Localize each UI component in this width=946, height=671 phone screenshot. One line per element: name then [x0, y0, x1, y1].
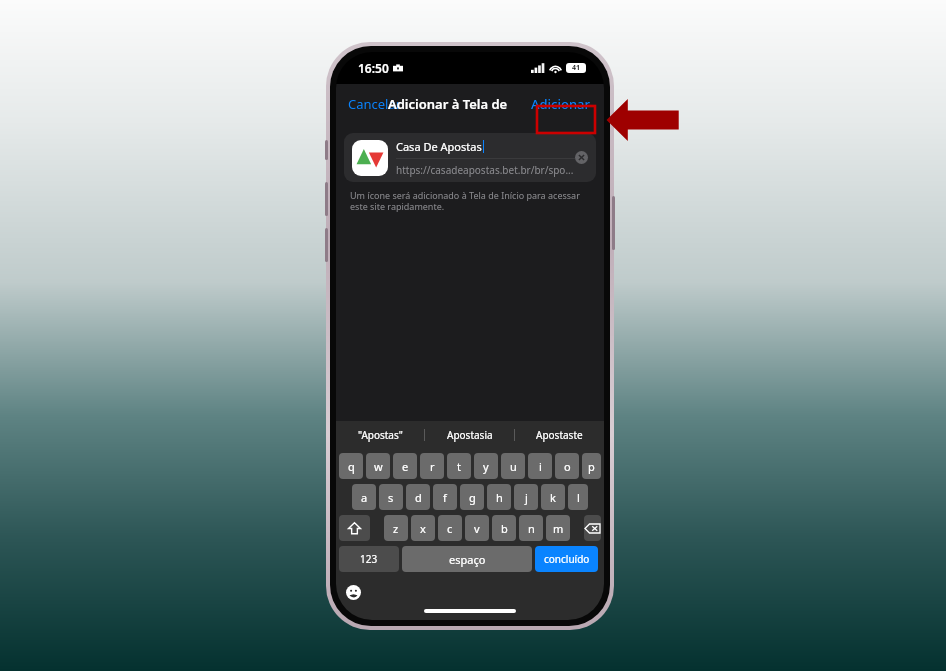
staticText: 16:50 — [358, 60, 389, 76]
button[interactable]: m — [546, 515, 570, 541]
staticText: j — [525, 490, 528, 505]
button[interactable]: Apostasia — [425, 421, 514, 449]
staticText: a — [361, 490, 368, 505]
staticText: Apostasia — [447, 428, 493, 442]
staticText: q — [348, 459, 355, 474]
staticText: e — [402, 459, 409, 474]
button[interactable]: d — [406, 484, 430, 510]
staticText: g — [469, 490, 476, 505]
button[interactable]: p — [582, 453, 601, 479]
staticText: d — [415, 490, 422, 505]
button[interactable]: r — [420, 453, 444, 479]
staticText: concluído — [544, 552, 590, 566]
button[interactable]: w — [366, 453, 390, 479]
button[interactable]: Adicionar — [524, 89, 598, 119]
staticText: o — [564, 459, 571, 474]
button[interactable]: x — [411, 515, 435, 541]
button[interactable]: Casa De Apostas — [344, 133, 596, 182]
staticText: n — [528, 521, 535, 536]
staticText: Adicionar à Tela de Início — [388, 95, 540, 113]
button[interactable]: Apostaste — [515, 421, 604, 449]
button[interactable]: g — [460, 484, 484, 510]
button[interactable]: j — [514, 484, 538, 510]
button[interactable]: b — [492, 515, 516, 541]
staticText: u — [510, 459, 517, 474]
button[interactable]: "Apostas" — [336, 421, 424, 449]
button[interactable]: Emoji — [346, 585, 361, 600]
button[interactable]: z — [384, 515, 408, 541]
button[interactable]: n — [519, 515, 543, 541]
staticText: z — [393, 521, 399, 536]
staticText: 41 — [572, 63, 581, 73]
staticText: i — [539, 459, 542, 474]
button[interactable]: 123 — [339, 546, 399, 572]
staticText: s — [388, 490, 394, 505]
staticText: k — [550, 490, 556, 505]
button[interactable]: Limpar — [575, 151, 588, 164]
staticText: "Apostas" — [358, 428, 403, 442]
staticText: Adicionar — [531, 95, 591, 113]
staticText: Um ícone será adicionado à Tela de Iníci… — [350, 189, 590, 213]
staticText: l — [577, 490, 580, 505]
staticText: https://casadeapostas.bet.br/br/spo... — [396, 163, 574, 177]
button[interactable]: v — [465, 515, 489, 541]
button[interactable]: f — [433, 484, 457, 510]
button[interactable]: c — [438, 515, 462, 541]
button[interactable]: l — [568, 484, 588, 510]
button[interactable]: a — [352, 484, 376, 510]
staticText: m — [553, 521, 564, 536]
staticText: c — [447, 521, 453, 536]
button[interactable]: s — [379, 484, 403, 510]
staticText: h — [496, 490, 503, 505]
staticText: w — [374, 459, 383, 474]
staticText: r — [430, 459, 435, 474]
button[interactable]: q — [339, 453, 363, 479]
staticText: Casa De Apostas — [396, 139, 482, 154]
staticText: y — [483, 459, 489, 474]
staticText: f — [443, 490, 447, 505]
staticText: v — [474, 521, 480, 536]
staticText: p — [588, 459, 595, 474]
button[interactable]: i — [528, 453, 552, 479]
button[interactable]: u — [501, 453, 525, 479]
button[interactable]: t — [447, 453, 471, 479]
button[interactable]: h — [487, 484, 511, 510]
button[interactable]: Apagar — [584, 515, 601, 541]
staticText: b — [501, 521, 508, 536]
staticText: espaço — [449, 552, 486, 567]
staticText: 123 — [360, 552, 378, 566]
staticText: x — [420, 521, 426, 536]
staticText: Apostaste — [536, 428, 583, 442]
button[interactable]: espaço — [402, 546, 532, 572]
button[interactable]: Shift — [339, 515, 370, 541]
button[interactable]: concluído — [535, 546, 598, 572]
button[interactable]: e — [393, 453, 417, 479]
staticText: Cancelar — [348, 95, 402, 113]
button[interactable]: y — [474, 453, 498, 479]
staticText: t — [457, 459, 461, 474]
button[interactable]: k — [541, 484, 565, 510]
button[interactable]: Cancelar — [344, 91, 406, 117]
button[interactable]: o — [555, 453, 579, 479]
